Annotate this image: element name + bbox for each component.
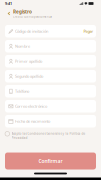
button[interactable]: Teléfono (5, 85, 96, 97)
staticText: Primer apellido (15, 59, 42, 64)
button[interactable]: Confirmar (5, 152, 96, 169)
button[interactable]: Segundo apellido (5, 70, 96, 82)
staticText: Privacidad (12, 136, 28, 140)
staticText: Segundo apellido (15, 74, 43, 79)
staticText: Crea tu cuenta para comenzar (13, 15, 52, 18)
button[interactable]: Nombre (5, 40, 96, 52)
button[interactable]: Primer apellido (5, 55, 96, 67)
button[interactable]: Back (5, 7, 13, 20)
button[interactable]: Código de invitación (5, 25, 96, 37)
staticText: Confirmar (38, 158, 62, 164)
staticText: Correo electrónico (15, 104, 47, 109)
staticText: Pegar (83, 29, 93, 34)
staticText: 9:41 (5, 1, 12, 6)
button[interactable]: Acepto las Condiciones Generales y la Po… (0, 131, 101, 140)
staticText: Teléfono (15, 89, 29, 94)
button[interactable]: Fecha de nacimiento (5, 115, 96, 127)
staticText: Nombre (15, 44, 30, 49)
staticText: Acepto las Condiciones Generales y la Po… (12, 131, 86, 135)
button[interactable]: Correo electrónico (5, 100, 96, 112)
staticText: Fecha de nacimiento (15, 119, 50, 124)
staticText: Registro (13, 9, 32, 15)
staticText: Código de invitación (15, 29, 48, 34)
